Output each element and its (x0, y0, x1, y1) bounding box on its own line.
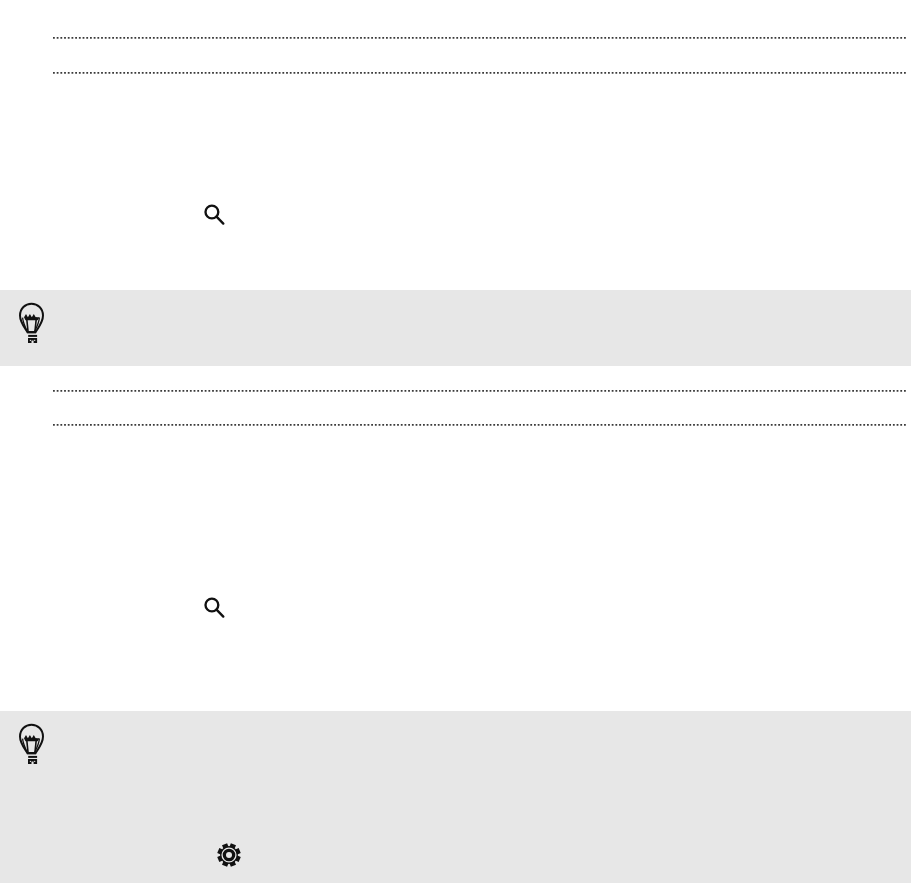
button[interactable]: Settings (205, 831, 253, 879)
button[interactable]: Tip (0, 290, 911, 366)
button[interactable]: Tip (0, 711, 911, 883)
button[interactable]: Search (202, 595, 226, 619)
button[interactable]: Search (202, 202, 226, 226)
